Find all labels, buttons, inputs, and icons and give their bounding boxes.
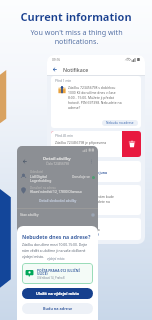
staticText: 8:00 - 15:00. Můžete ji předat <box>68 95 114 100</box>
button[interactable]: Budu na adrese <box>22 303 93 314</box>
staticText: doručena dnes. Budete na <box>68 199 110 204</box>
staticText: Před 1 min <box>55 79 72 83</box>
staticText: Doručuje se <box>72 175 90 179</box>
staticText: Lidl Digital Lagerholding <box>30 174 52 183</box>
staticText: POŠTA PRAHA 012 (ULIČNÍ ULICE) <box>37 268 80 276</box>
staticText: Odesílatel <box>30 170 44 174</box>
staticText: Nebudu na adrese <box>106 121 134 125</box>
staticText: Před 1 dnem <box>55 188 75 192</box>
button[interactable]: Před 1 dnem <box>51 185 141 215</box>
staticText: Doručení na adresu <box>30 186 56 190</box>
staticText: Budu na adrese <box>43 306 73 311</box>
staticText: Current information <box>20 9 132 24</box>
staticText: adrese? <box>68 204 81 209</box>
staticText: Zásilka 723456798 je připravena <box>55 140 107 145</box>
staticText: byla <box>68 175 75 180</box>
button[interactable]: Back <box>50 65 59 74</box>
button[interactable]: Delete <box>122 131 141 157</box>
button[interactable]: POŠTA PRAHA 012 (ULIČNÍ ULICE) <box>22 263 93 284</box>
staticText: Notifikace <box>63 66 89 73</box>
button[interactable]: Back <box>20 157 28 165</box>
staticText: Zásilku doručíme mezi 10:00-15:00. Dejte… <box>22 242 88 259</box>
staticText: Stav zásilky <box>20 212 39 217</box>
button[interactable]: Před 2 hod <box>51 161 141 182</box>
staticText: na výdejním místě. <box>55 145 85 150</box>
staticText: Zásilka s dobírkou juna <box>68 170 108 175</box>
staticText: výdejní místo <box>47 257 65 261</box>
staticText: Číslo 723456798 <box>46 162 69 166</box>
staticText: Zásilka byla uložena <box>68 227 100 232</box>
staticText: Uložit na výdejní místo <box>36 291 80 296</box>
staticText: Zásilka 723456798 vám bude <box>68 194 114 199</box>
staticText: adrese? <box>68 105 81 110</box>
staticText: 09:16 <box>52 58 61 62</box>
staticText: Před 45 min <box>55 134 74 138</box>
staticText: na výdejním místě <box>68 232 100 237</box>
button[interactable]: Před 45 min <box>51 131 122 157</box>
button[interactable]: Před 1 min <box>51 76 141 128</box>
staticText: You won't miss a thing with notification… <box>30 27 123 46</box>
staticText: hotově. PIN 697398. Nebudete na <box>68 100 122 105</box>
staticText: Nebudete dnes na adrese? <box>22 233 91 240</box>
staticText: Detail zásilky <box>43 156 71 162</box>
staticText: Před 2 hod <box>55 164 72 168</box>
button[interactable]: Před 2 dny <box>51 218 141 240</box>
button[interactable]: Nebudu na adrese <box>102 120 138 126</box>
staticText: Uličníková 14, Praha 8 <box>37 276 65 280</box>
staticText: Hlavní náměstí 12, 17800 Olomouc <box>30 190 82 194</box>
staticText: Zásilku 723456798 s dobírkou <box>68 85 116 90</box>
button[interactable]: Uložit na výdejní místo <box>22 288 93 299</box>
staticText: 1000 Kč doručíme dnes v čase <box>68 90 116 95</box>
button[interactable]: Detail sledování zásilky <box>39 198 77 203</box>
